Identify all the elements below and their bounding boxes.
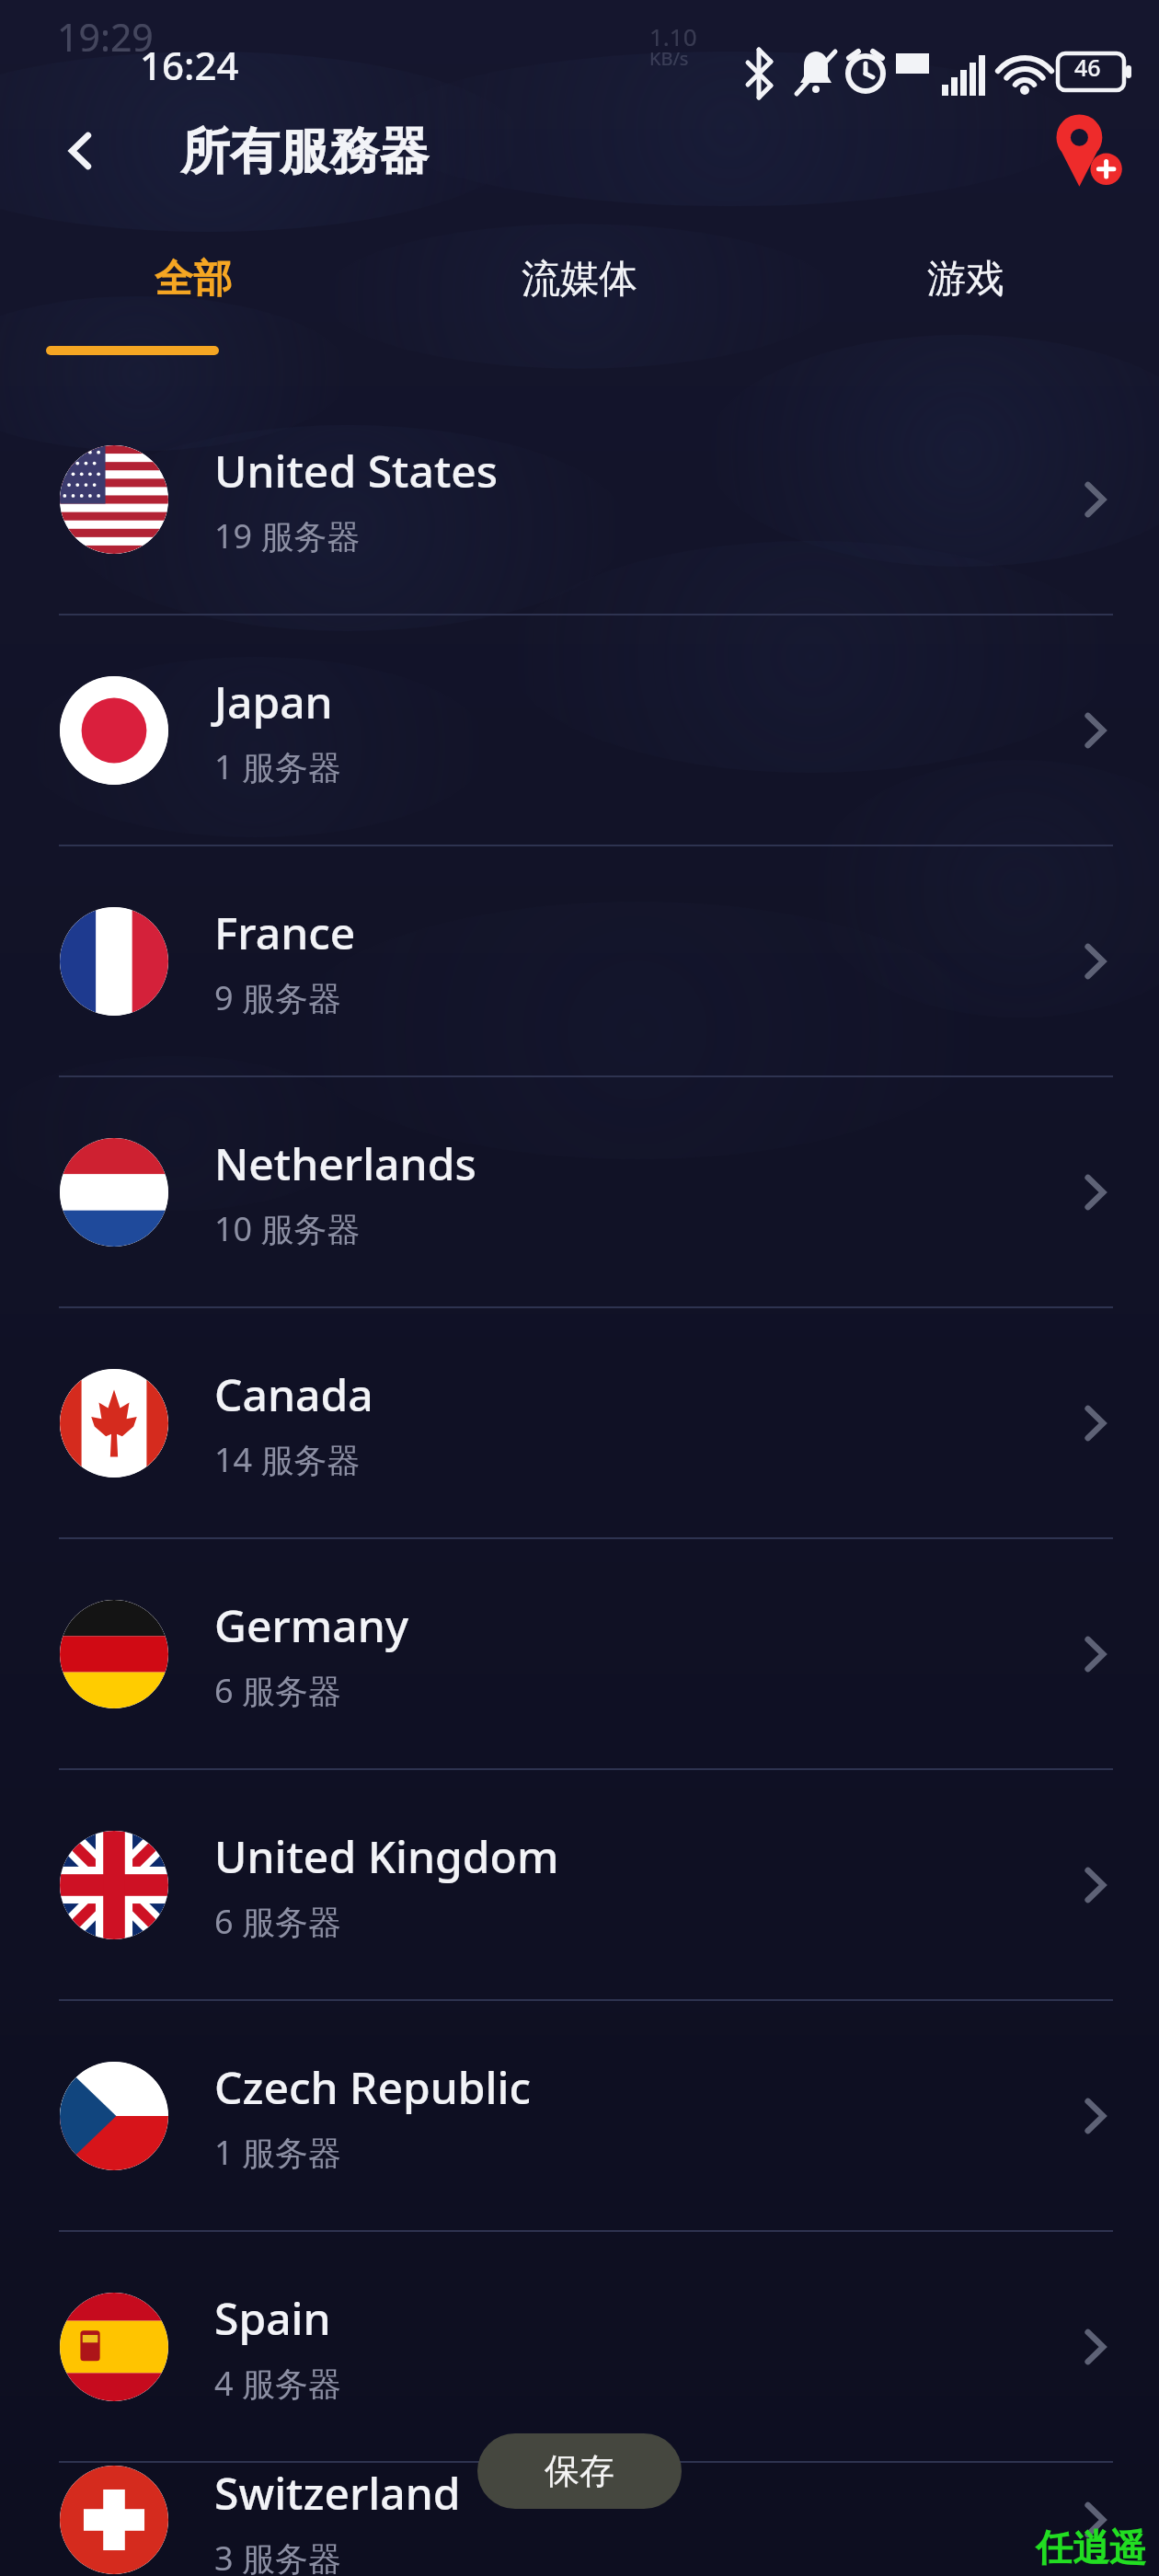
- staticText: 10 服务器: [214, 1206, 361, 1251]
- staticText: United Kingdom: [214, 1826, 559, 1886]
- button[interactable]: Germany: [0, 1539, 1159, 1768]
- other: Open Switzerland: [1050, 2476, 1139, 2564]
- other: Open Netherlands: [1050, 1148, 1139, 1236]
- staticText: 保存: [545, 2449, 614, 2493]
- other: Open Spain: [1050, 2303, 1139, 2391]
- button[interactable]: Spain: [0, 2232, 1159, 2461]
- other: Open Japan: [1050, 686, 1139, 775]
- button[interactable]: Switzerland: [0, 2463, 1159, 2576]
- staticText: Japan: [214, 672, 333, 731]
- staticText: 46: [1074, 52, 1101, 83]
- staticText: Canada: [214, 1364, 373, 1424]
- staticText: 16:24: [140, 39, 239, 91]
- button[interactable]: United States: [0, 385, 1159, 614]
- button[interactable]: Canada: [0, 1308, 1159, 1537]
- staticText: France: [214, 903, 356, 962]
- button[interactable]: France: [0, 846, 1159, 1075]
- button[interactable]: Czech Republic: [0, 2001, 1159, 2230]
- staticText: 14 服务器: [214, 1437, 361, 1482]
- staticText: Germany: [214, 1595, 409, 1655]
- other: Open United Kingdom: [1050, 1841, 1139, 1929]
- staticText: 1 服务器: [214, 2130, 341, 2175]
- staticText: 任逍遥: [1036, 2524, 1146, 2570]
- button[interactable]: United Kingdom: [0, 1770, 1159, 1999]
- staticText: 所有服務器: [180, 121, 429, 183]
- other: Open Czech Republic: [1050, 2072, 1139, 2160]
- other: Open Canada: [1050, 1379, 1139, 1467]
- staticText: United States: [214, 441, 499, 500]
- staticText: KB/s: [649, 46, 689, 71]
- staticText: 1.10: [649, 20, 697, 52]
- staticText: Netherlands: [214, 1133, 476, 1193]
- staticText: Spain: [214, 2288, 331, 2348]
- staticText: 游戏: [927, 255, 1004, 304]
- staticText: Czech Republic: [214, 2057, 532, 2117]
- other: Open France: [1050, 917, 1139, 1006]
- button[interactable]: Add location: [1038, 101, 1137, 201]
- staticText: 4 服务器: [214, 2361, 341, 2406]
- staticText: 6 服务器: [214, 1899, 341, 1944]
- staticText: 9 服务器: [214, 975, 341, 1020]
- staticText: 19:29: [57, 11, 154, 63]
- button[interactable]: 游戏: [773, 210, 1159, 348]
- button[interactable]: Back: [40, 110, 121, 191]
- button[interactable]: 保存: [477, 2433, 682, 2509]
- staticText: 流媒体: [522, 255, 637, 304]
- staticText: 3 服务器: [214, 2536, 341, 2576]
- other: Open Germany: [1050, 1610, 1139, 1698]
- staticText: 6 服务器: [214, 1668, 341, 1713]
- staticText: Switzerland: [214, 2463, 461, 2523]
- button[interactable]: 流媒体: [386, 210, 773, 348]
- staticText: 全部: [155, 255, 232, 304]
- other: Open United States: [1050, 455, 1139, 544]
- button[interactable]: 全部: [0, 210, 386, 348]
- staticText: 19 服务器: [214, 513, 361, 558]
- button[interactable]: Japan: [0, 615, 1159, 845]
- button[interactable]: Netherlands: [0, 1077, 1159, 1306]
- staticText: 1 服务器: [214, 744, 341, 789]
